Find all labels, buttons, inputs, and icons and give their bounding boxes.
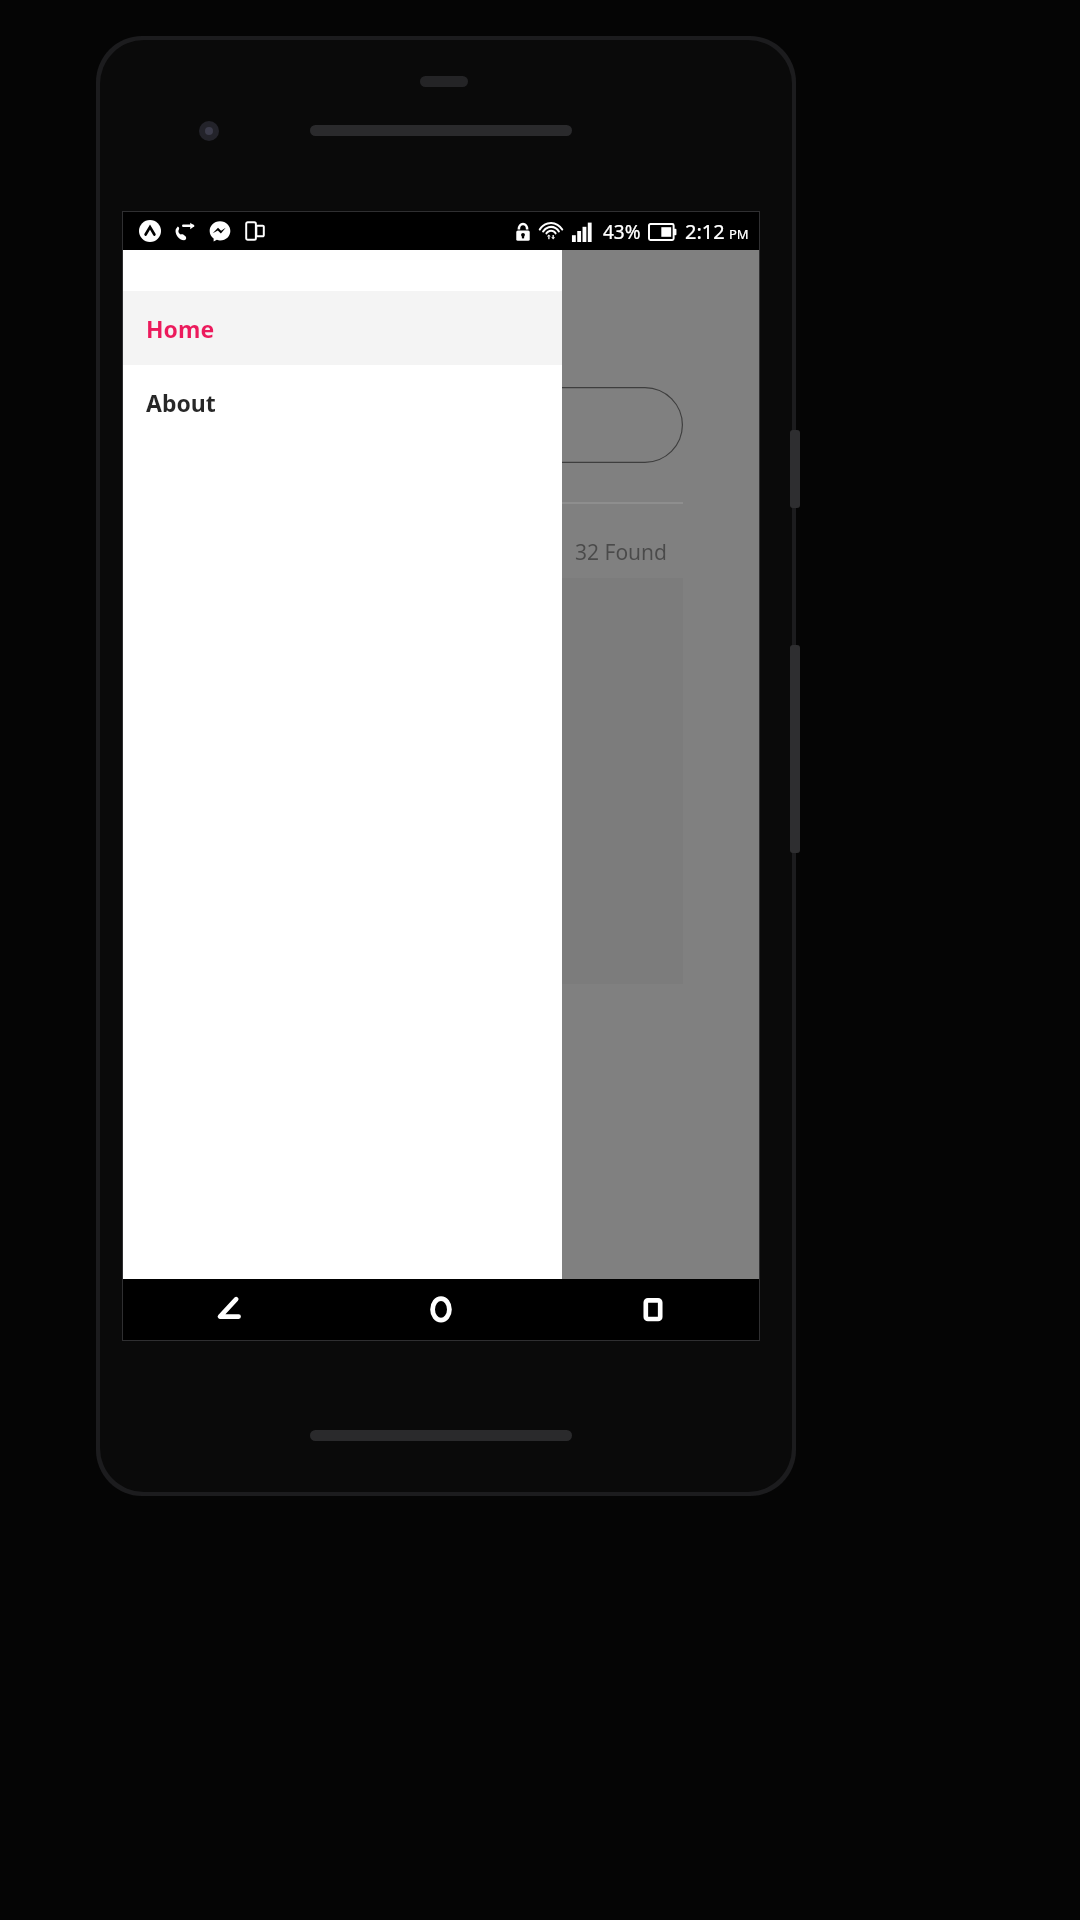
button[interactable]: About <box>123 365 562 439</box>
button[interactable]: Home <box>123 291 562 365</box>
staticText: Home <box>146 313 215 344</box>
staticText: About <box>146 387 216 418</box>
staticText: PM <box>729 225 749 243</box>
button[interactable]: Back <box>123 1279 335 1340</box>
staticText: 43% <box>603 219 641 245</box>
button[interactable]: Recents <box>547 1279 759 1340</box>
staticText: 32 Found <box>575 538 667 567</box>
staticText: 2:12 <box>685 218 725 245</box>
button[interactable]: Home <box>335 1279 547 1340</box>
